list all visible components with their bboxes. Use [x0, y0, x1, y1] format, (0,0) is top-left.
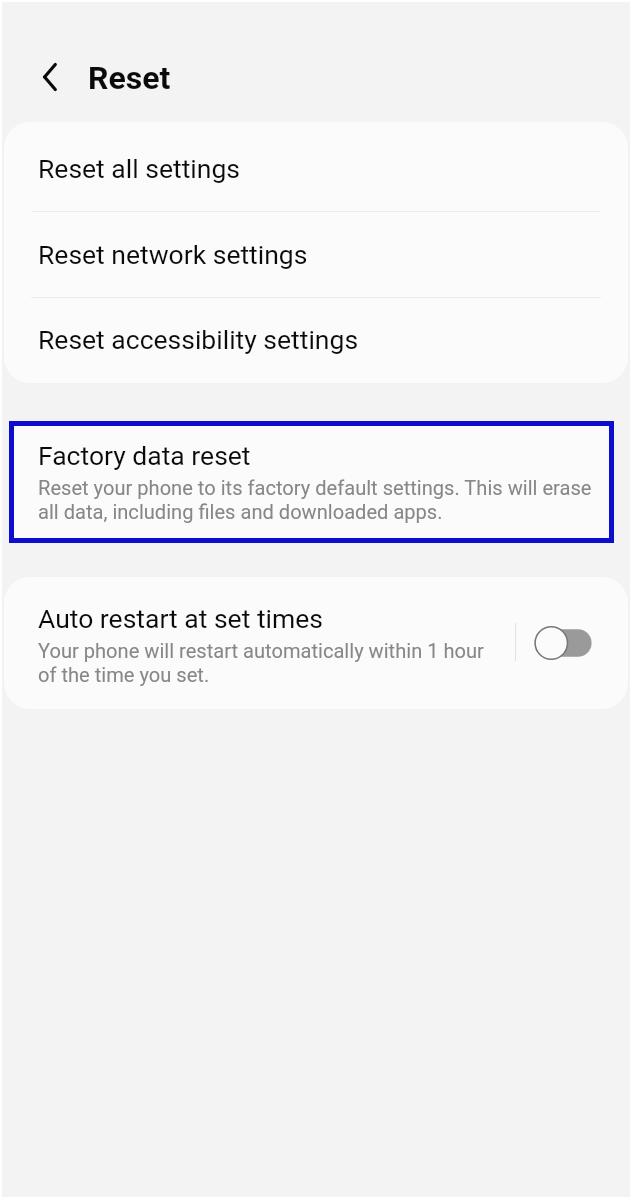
- button[interactable]: Reset accessibility settings: [4, 293, 628, 379]
- staticText: Reset: [88, 59, 171, 97]
- staticText: Reset your phone to its factory default …: [38, 476, 600, 523]
- staticText: Auto restart at set times: [38, 603, 323, 634]
- button[interactable]: Factory data reset: [9, 421, 614, 543]
- button[interactable]: Reset all settings: [4, 122, 628, 208]
- staticText: Factory data reset: [38, 440, 251, 471]
- button[interactable]: Auto restart at set times, off: [530, 624, 592, 662]
- staticText: Reset network settings: [38, 239, 308, 270]
- button[interactable]: Auto restart at set times: [4, 577, 628, 709]
- staticText: Your phone will restart automatically wi…: [38, 639, 493, 686]
- staticText: Reset all settings: [38, 153, 240, 184]
- button[interactable]: Navigate up: [27, 54, 73, 100]
- button[interactable]: Reset network settings: [4, 208, 628, 294]
- staticText: Reset accessibility settings: [38, 324, 359, 355]
